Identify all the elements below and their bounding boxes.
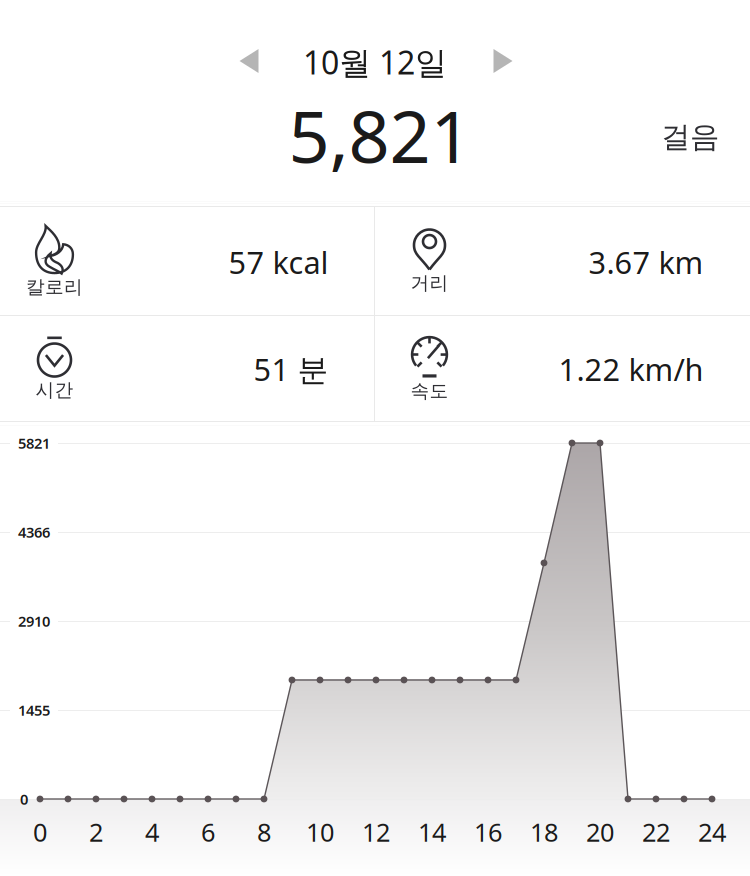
staticText: 57 kcal <box>228 242 328 282</box>
staticText: 5,821 <box>288 87 471 183</box>
staticText: 거리 <box>410 271 448 294</box>
staticText: 2910 <box>18 611 50 631</box>
staticText: 속도 <box>410 379 448 402</box>
staticText: 6 <box>201 815 215 849</box>
staticText: 24 <box>698 815 726 849</box>
staticText: 18 <box>530 815 558 849</box>
button[interactable]: Previous day <box>225 35 272 87</box>
staticText: 1455 <box>18 700 50 720</box>
button[interactable]: Next day <box>479 35 526 87</box>
staticText: 5821 <box>18 433 50 453</box>
staticText: 0 <box>20 789 28 809</box>
staticText: 20 <box>586 815 614 849</box>
staticText: 12 <box>362 815 390 849</box>
staticText: 1.22 km/h <box>558 349 703 389</box>
staticText: 10 <box>306 815 334 849</box>
staticText: 2 <box>89 815 103 849</box>
button[interactable]: 칼로리 <box>0 208 374 316</box>
staticText: 0 <box>33 815 47 849</box>
staticText: 22 <box>642 815 670 849</box>
staticText: 8 <box>257 815 271 849</box>
staticText: 16 <box>474 815 502 849</box>
staticText: 걸음 <box>661 119 719 155</box>
button[interactable]: 속도 <box>374 315 749 423</box>
staticText: 칼로리 <box>26 275 83 298</box>
staticText: 4366 <box>18 522 50 542</box>
staticText: 시간 <box>35 378 73 401</box>
button[interactable]: 거리 <box>374 208 749 316</box>
staticText: 51 분 <box>253 349 328 389</box>
staticText: 4 <box>145 815 159 849</box>
staticText: 14 <box>418 815 446 849</box>
staticText: 3.67 km <box>588 242 703 282</box>
staticText: 10월 12일 <box>303 41 447 83</box>
button[interactable]: 시간 <box>0 315 374 423</box>
